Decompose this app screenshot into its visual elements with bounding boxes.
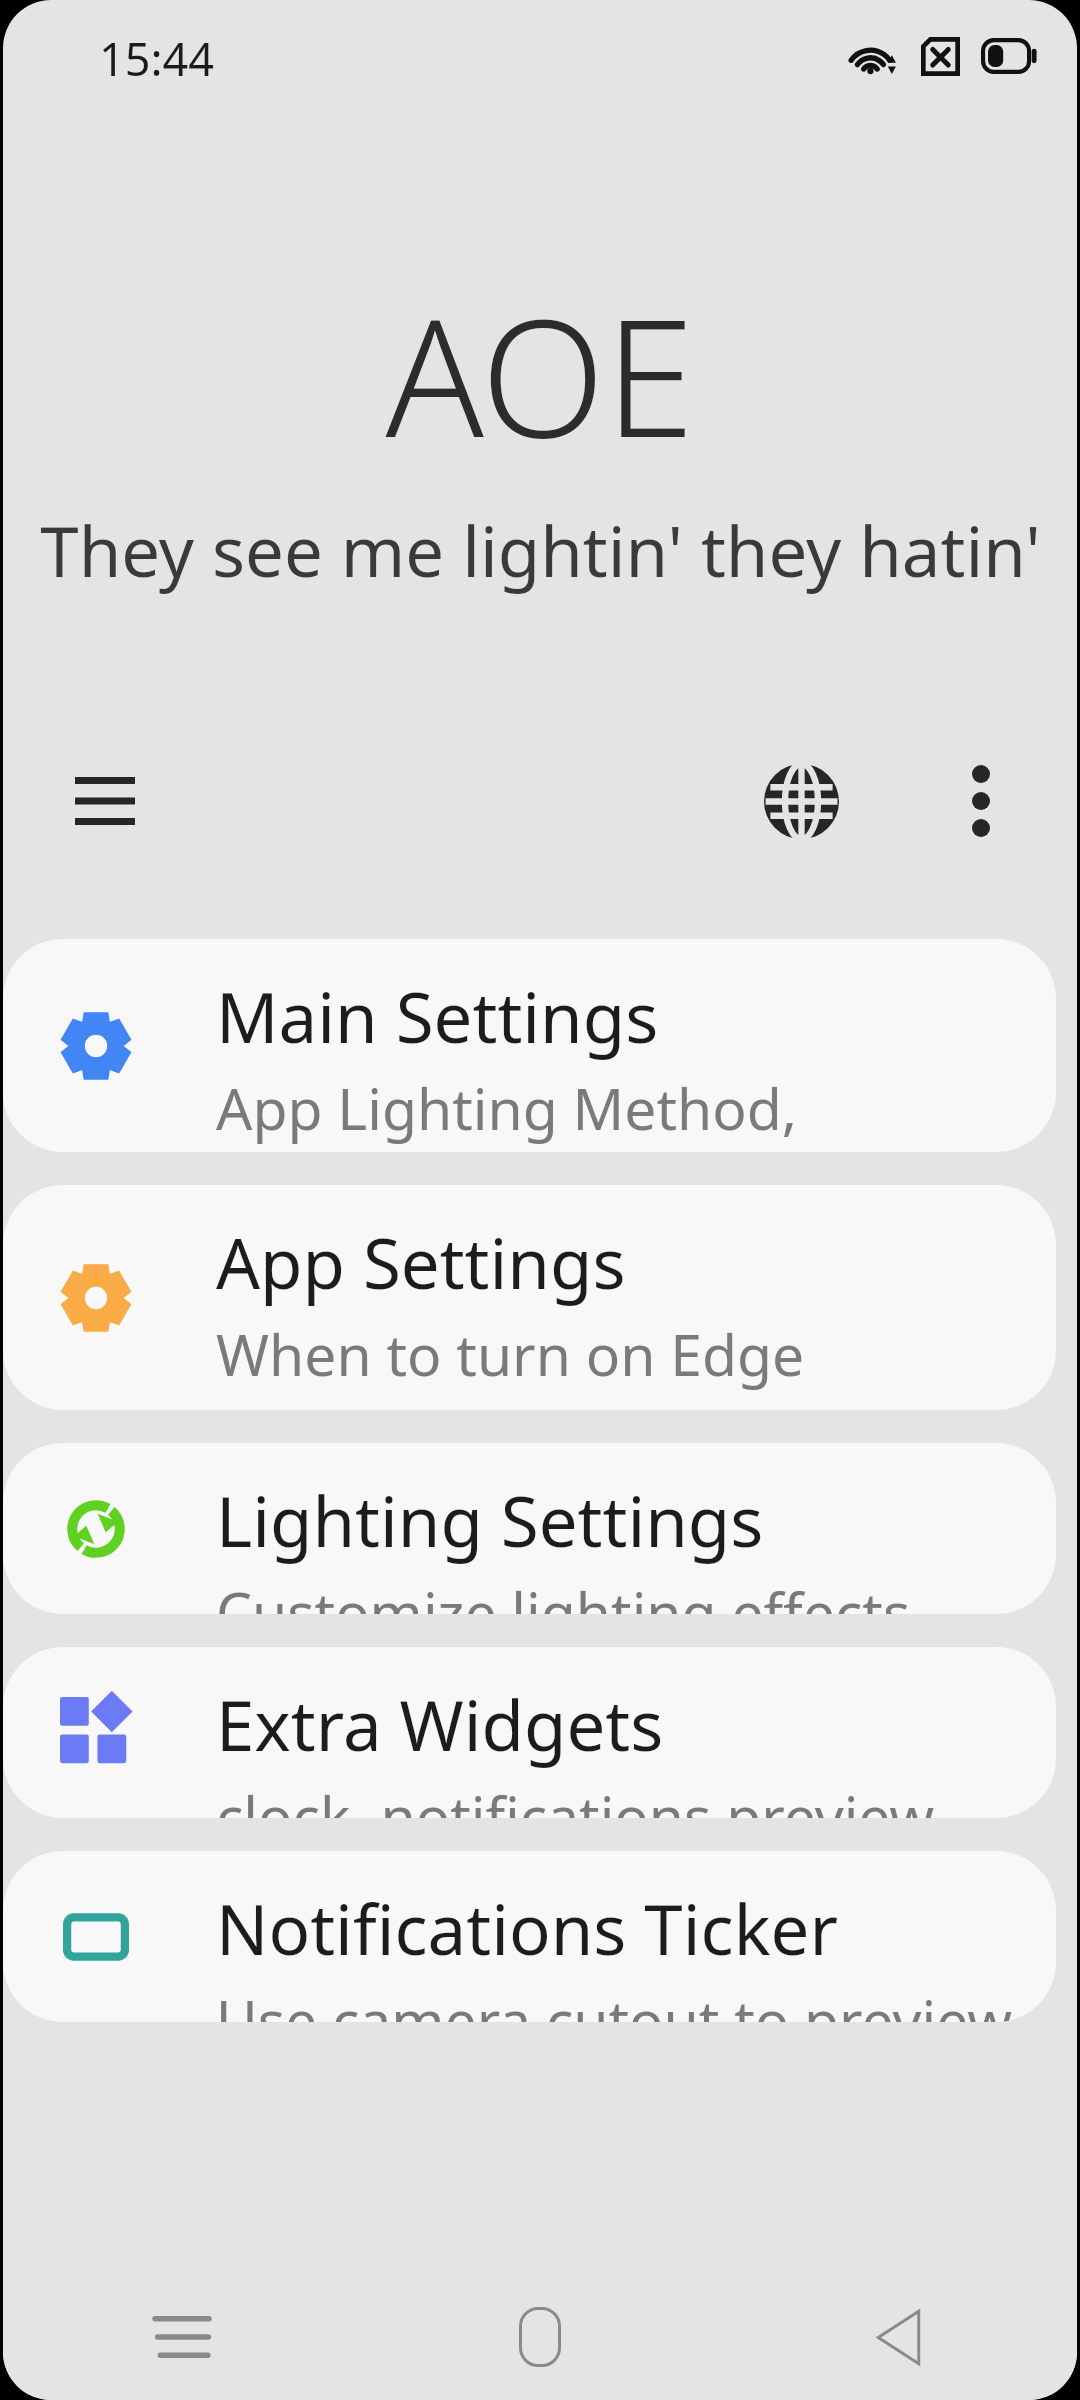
staticText: Use camera cutout to preview received no… xyxy=(216,1981,1032,2022)
staticText: Customize lighting effects, notch and sc… xyxy=(216,1573,1032,1614)
staticText: 15:44 xyxy=(99,28,215,89)
staticText: clock, notifications preview panel and m… xyxy=(216,1777,1032,1818)
staticText: When to turn on Edge Lighting?, Restrict… xyxy=(216,1315,1032,1410)
staticText: Extra Widgets xyxy=(216,1677,664,1771)
button[interactable]: Menu xyxy=(27,723,183,879)
staticText: They see me lightin' they hatin' xyxy=(40,503,1041,597)
staticText: App Settings xyxy=(216,1215,626,1309)
button[interactable]: Language xyxy=(723,723,879,879)
staticText: Main Settings xyxy=(216,969,659,1063)
button[interactable]: Notifications Ticker xyxy=(3,1851,1056,2022)
button[interactable]: Home xyxy=(361,2274,719,2400)
staticText: App Lighting Method, Required Permission… xyxy=(216,1069,1032,1152)
staticText: Notifications Ticker xyxy=(216,1881,838,1975)
button[interactable]: Back xyxy=(719,2274,1077,2400)
button[interactable]: Extra Widgets xyxy=(3,1647,1056,1818)
button[interactable]: Recents xyxy=(3,2274,361,2400)
button[interactable]: More options xyxy=(909,729,1053,873)
button[interactable]: Main Settings xyxy=(3,939,1056,1152)
button[interactable]: Lighting Settings xyxy=(3,1443,1056,1614)
staticText: Lighting Settings xyxy=(216,1473,764,1567)
button[interactable]: App Settings xyxy=(3,1185,1056,1410)
staticText: AOE xyxy=(385,264,695,485)
